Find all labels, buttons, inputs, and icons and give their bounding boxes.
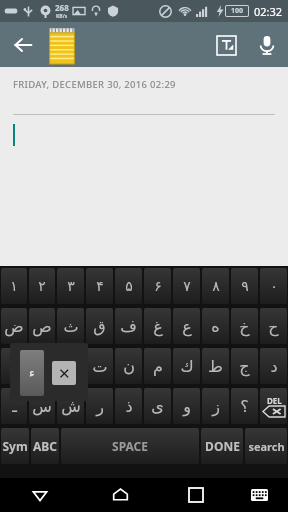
button[interactable]: د [260,348,287,384]
button[interactable]: ى [144,388,171,424]
button[interactable]: Home [80,478,161,512]
staticText: ص [32,317,52,336]
button[interactable]: ء [20,350,44,396]
staticText: 02:32 [254,4,283,19]
button[interactable]: ه [202,308,229,344]
button[interactable]: م [144,348,171,384]
staticText: ۸ [212,278,220,294]
staticText: و [183,397,191,416]
button[interactable]: Voice input [246,24,288,66]
button[interactable]: search [245,428,287,464]
staticText: ع [182,317,192,336]
staticText: ۴ [96,278,104,294]
staticText: ۲ [38,278,46,294]
button[interactable]: ز [202,388,229,424]
button[interactable]: ص [29,308,55,344]
staticText: ض [4,317,24,336]
button[interactable]: ف [115,308,142,344]
staticText: ABC [33,438,57,454]
staticText: ى [151,397,164,416]
staticText: ر [96,397,104,416]
button[interactable]: ك [173,348,200,384]
staticText: ث [63,317,79,336]
button[interactable]: ۸ [202,268,229,304]
button[interactable]: ض [1,308,27,344]
staticText: ت [92,357,108,376]
button[interactable]: ش [57,388,84,424]
staticText: خ [239,317,250,336]
button[interactable]: ط [202,348,229,384]
button[interactable]: ـ [1,388,27,424]
button[interactable]: ۳ [57,268,84,304]
button[interactable]: ۷ [173,268,200,304]
button[interactable]: ذ [115,388,142,424]
staticText: ۵ [125,278,133,294]
staticText: م [153,357,163,376]
staticText: search [248,439,285,454]
button[interactable]: Text format [206,25,246,65]
button[interactable]: ۲ [29,268,55,304]
staticText: DONE [205,438,240,454]
button[interactable]: ر [86,388,113,424]
staticText: ۳ [67,278,75,294]
staticText: ✕ [58,365,71,382]
button[interactable]: SPACE [61,428,199,464]
button[interactable]: Sym [1,428,29,464]
staticText: ۶ [154,278,162,294]
staticText: ط [208,357,223,376]
button[interactable]: ن [115,348,142,384]
staticText: 100 [231,6,244,16]
button[interactable]: ۱ [1,268,27,304]
button[interactable] [48,26,76,64]
button[interactable]: چ [29,348,55,384]
button[interactable]: ۰ [260,268,287,304]
button[interactable]: ۹ [231,268,258,304]
staticText: ج [239,357,250,376]
staticText: ۱ [10,278,18,294]
button[interactable]: ع [173,308,200,344]
button[interactable]: ۵ [115,268,142,304]
button[interactable]: ق [86,308,113,344]
staticText: ۷ [183,278,191,294]
staticText: Sym [2,438,28,454]
staticText: پ [63,357,79,376]
button[interactable]: ج [1,348,27,384]
staticText: د [270,357,278,376]
button[interactable]: Delete [260,388,287,424]
button[interactable]: Back [0,478,80,512]
staticText: ذ [125,397,133,416]
button[interactable]: Close [52,361,76,385]
button[interactable]: ؟ [231,388,258,424]
staticText: ق [93,317,106,336]
button[interactable]: و [173,388,200,424]
staticText: ش [61,397,81,416]
button[interactable]: ح [260,308,287,344]
button[interactable]: Recent apps [161,478,230,512]
button[interactable]: Back [0,22,45,67]
button[interactable]: غ [144,308,171,344]
button[interactable]: DONE [201,428,243,464]
button[interactable]: ۶ [144,268,171,304]
button[interactable]: ج [231,348,258,384]
button[interactable]: خ [231,308,258,344]
staticText: 268 [55,2,69,13]
staticText: ۰ [270,278,278,294]
staticText: ز [212,397,220,416]
staticText: DEL [267,395,282,406]
staticText: ح [268,317,279,336]
staticText: ه [211,317,220,336]
staticText: ؟ [240,397,249,416]
staticText: KB/s [56,13,68,20]
button[interactable]: ت [86,348,113,384]
staticText: ء [29,366,35,380]
button[interactable]: ۴ [86,268,113,304]
button[interactable]: ث [57,308,84,344]
button[interactable]: س [29,388,55,424]
button[interactable]: پ [57,348,84,384]
staticText: س [32,397,52,416]
staticText: SPACE [112,438,148,454]
staticText: ـ [12,397,17,416]
button[interactable]: ABC [31,428,59,464]
button[interactable]: Switch keyboard [230,478,288,512]
